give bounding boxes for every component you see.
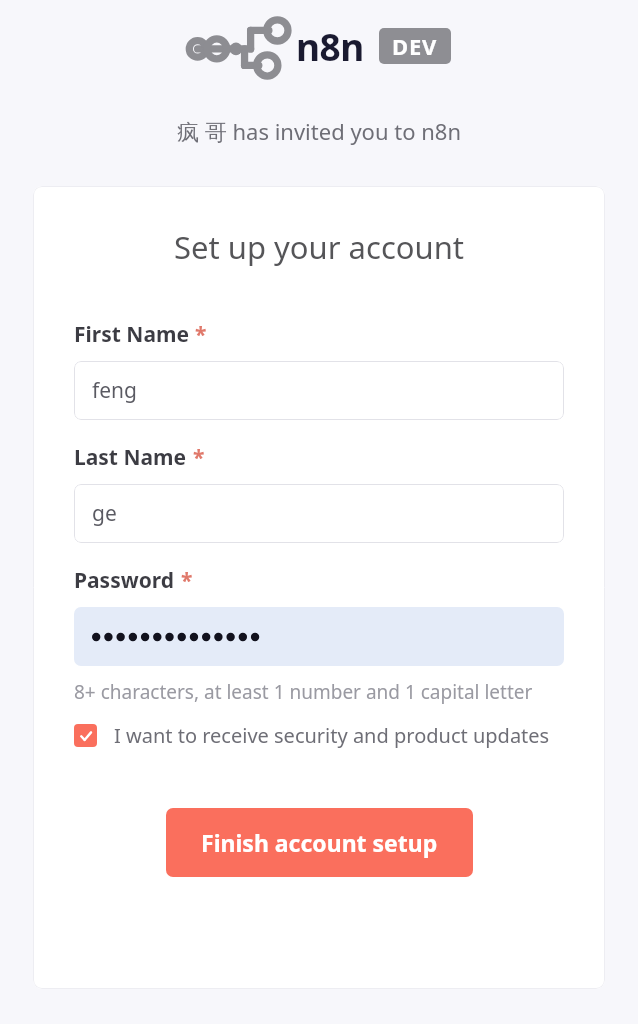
button[interactable]: feng [74, 361, 564, 420]
staticText: n8n [296, 21, 364, 71]
other: n8n logo [188, 22, 289, 70]
button[interactable]: Password [74, 607, 564, 666]
staticText: First Name [74, 320, 189, 349]
staticText: Last Name [74, 443, 187, 472]
staticText: DEV [392, 31, 438, 61]
button[interactable]: Finish account setup [166, 808, 473, 877]
staticText: Finish account setup [201, 827, 438, 858]
staticText: * [181, 566, 193, 595]
button[interactable]: ge [74, 484, 564, 543]
staticText: Password [74, 566, 175, 595]
staticText: 8+ characters, at least 1 number and 1 c… [74, 679, 533, 705]
staticText: feng [92, 376, 137, 405]
staticText: Set up your account [74, 226, 564, 268]
staticText: I want to receive security and product u… [114, 722, 550, 749]
staticText: * [193, 443, 205, 472]
staticText: ge [92, 499, 117, 528]
staticText: * [195, 320, 207, 349]
button[interactable]: I want to receive security and product u… [74, 720, 550, 751]
staticText: 疯 哥 has invited you to n8n [177, 116, 461, 146]
